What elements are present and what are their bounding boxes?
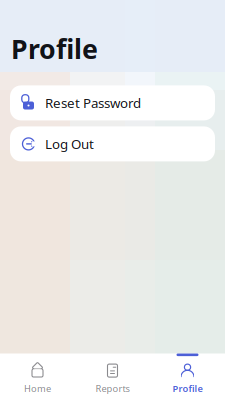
staticText: Reports: [95, 382, 129, 394]
staticText: Profile: [11, 31, 98, 66]
button[interactable]: Profile: [150, 355, 225, 400]
staticText: Log Out: [45, 135, 94, 153]
staticText: Profile: [172, 382, 202, 394]
button[interactable]: Log Out: [10, 126, 215, 161]
staticText: Reset Password: [45, 94, 141, 112]
button[interactable]: Reports: [75, 355, 150, 400]
button[interactable]: Home: [0, 355, 75, 400]
button[interactable]: Reset Password: [10, 85, 215, 120]
staticText: Home: [24, 382, 51, 394]
